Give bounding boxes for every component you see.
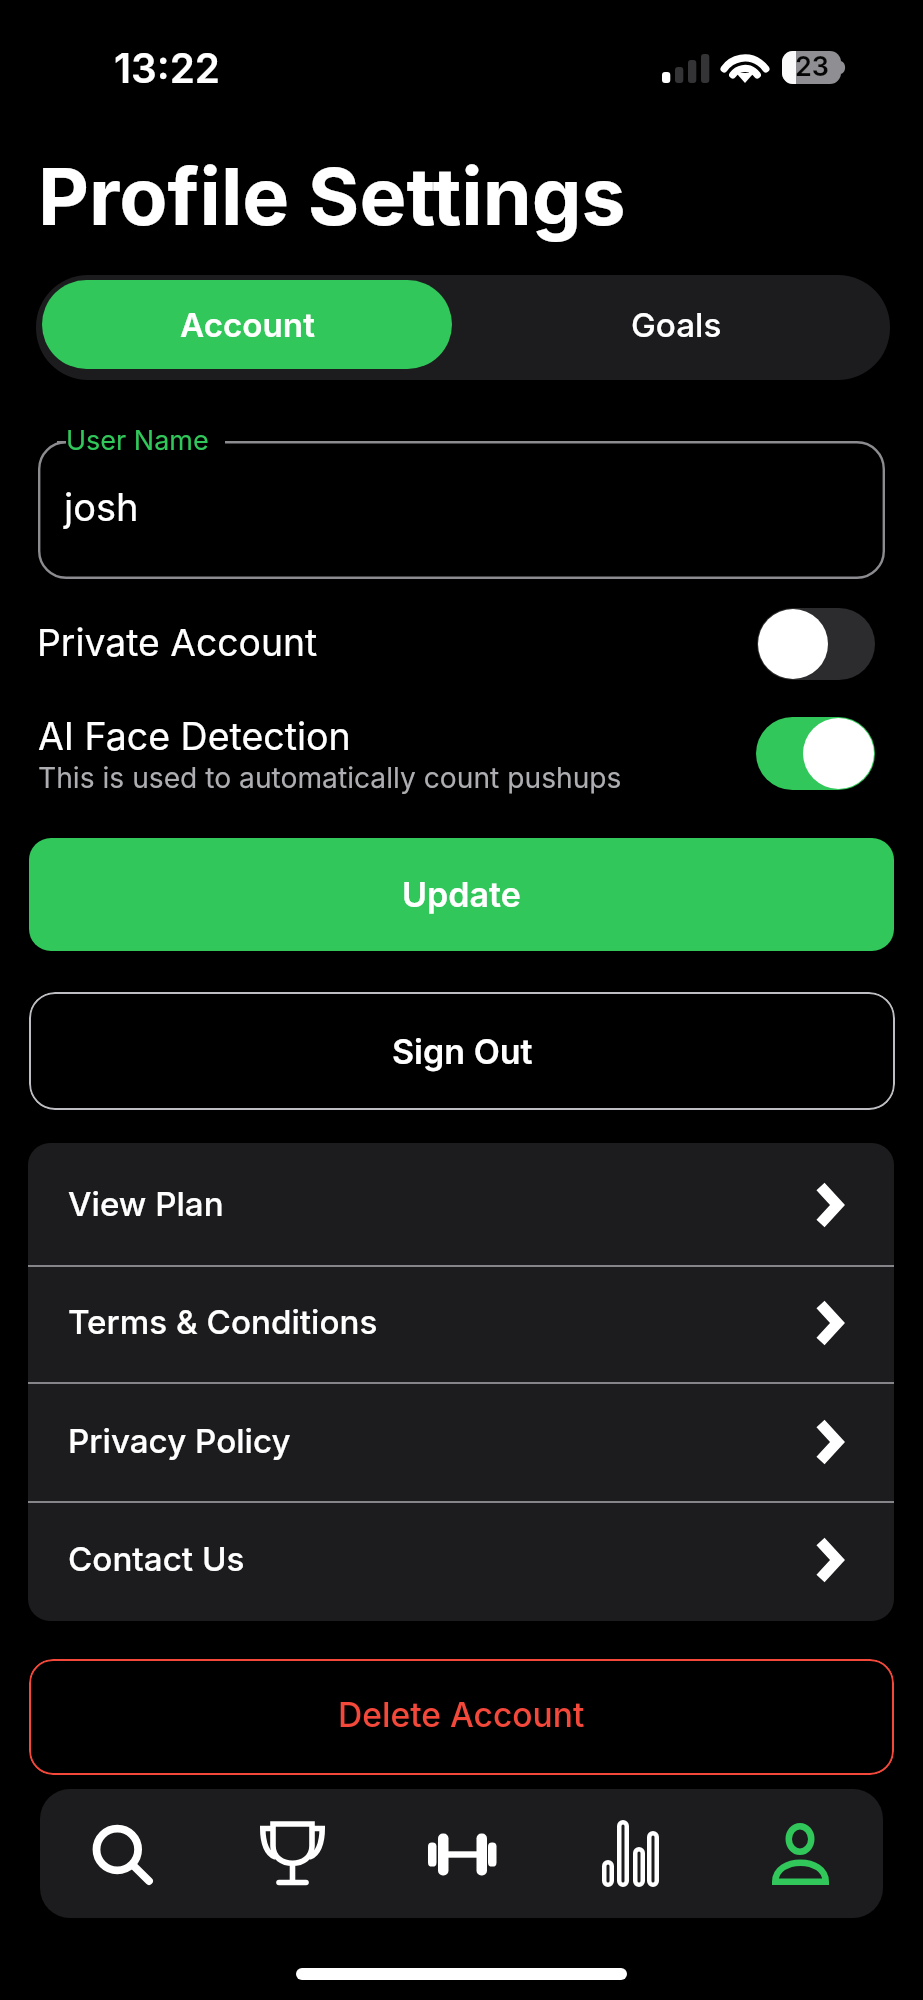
button[interactable]	[28, 1266, 894, 1383]
staticText: 13:22	[114, 44, 220, 93]
staticText: Delete Account	[338, 1694, 585, 1735]
button[interactable]: Search	[33, 1789, 201, 1918]
staticText: Update	[402, 874, 521, 915]
button[interactable]: Account	[42, 280, 452, 369]
staticText: Terms & Conditions	[68, 1302, 378, 1342]
button[interactable]: Sign Out	[29, 992, 895, 1110]
button[interactable]: Goals	[463, 280, 889, 369]
staticText: josh	[64, 484, 139, 530]
staticText: Sign Out	[392, 1031, 533, 1072]
button[interactable]: Workouts	[377, 1789, 545, 1918]
staticText: View Plan	[68, 1184, 224, 1224]
button[interactable]: Private Account switch, off	[757, 608, 875, 680]
staticText: Goals	[631, 305, 722, 345]
staticText: This is used to automatically count push…	[38, 761, 622, 795]
button[interactable]: Profile	[716, 1789, 884, 1918]
staticText: Contact Us	[68, 1539, 245, 1579]
button[interactable]: Delete Account	[29, 1659, 894, 1775]
staticText: Profile Settings	[38, 149, 626, 244]
staticText: Private Account	[37, 620, 318, 665]
button[interactable]: Leaderboard	[208, 1789, 376, 1918]
staticText: 23	[795, 50, 830, 83]
button[interactable]: Update	[29, 838, 894, 951]
staticText: Privacy Policy	[68, 1421, 291, 1461]
button[interactable]	[28, 1143, 894, 1266]
staticText: Account	[180, 305, 315, 345]
staticText: AI Face Detection	[38, 714, 351, 759]
button[interactable]: Statistics	[547, 1789, 715, 1918]
staticText: User Name	[66, 424, 209, 457]
button[interactable]	[28, 1383, 894, 1502]
button[interactable]: AI Face Detection switch, on	[756, 717, 875, 790]
button[interactable]	[28, 1502, 894, 1621]
